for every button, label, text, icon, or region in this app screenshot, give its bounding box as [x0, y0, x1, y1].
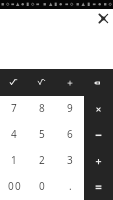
button[interactable]: 2	[28, 148, 56, 174]
staticText: 0	[39, 179, 45, 193]
button[interactable]: 0	[28, 174, 56, 200]
staticText: 6	[67, 127, 73, 141]
staticText: .	[69, 179, 72, 193]
button[interactable]: 9	[56, 96, 84, 122]
button[interactable]: 5	[28, 122, 56, 148]
button[interactable]: 8	[28, 96, 56, 122]
button[interactable]: 6	[56, 122, 84, 148]
staticText: 00	[8, 179, 22, 193]
button[interactable]: 7	[0, 96, 28, 122]
staticText: 9	[67, 101, 73, 115]
button[interactable]: Exit fullscreen	[98, 13, 109, 24]
staticText: 4	[11, 127, 17, 141]
button[interactable]: Multiply	[84, 96, 113, 122]
button[interactable]: 00	[0, 174, 28, 200]
staticText: 1	[11, 153, 17, 167]
button[interactable]: 4	[0, 122, 28, 148]
button[interactable]: Plus minus	[56, 69, 84, 96]
button[interactable]: Plus	[84, 148, 113, 174]
staticText: 5	[39, 127, 45, 141]
staticText: 8	[39, 101, 45, 115]
button[interactable]: .	[56, 174, 84, 200]
button[interactable]: Cube root	[28, 69, 56, 96]
button[interactable]: Minus	[84, 122, 113, 148]
button[interactable]: Square root	[0, 69, 28, 96]
button[interactable]: 1	[0, 148, 28, 174]
staticText: 3	[67, 153, 73, 167]
button[interactable]: Backspace	[84, 69, 113, 96]
button[interactable]: Equals	[84, 174, 113, 200]
button[interactable]: 3	[56, 148, 84, 174]
staticText: 2	[39, 153, 45, 167]
staticText: 7	[11, 101, 17, 115]
